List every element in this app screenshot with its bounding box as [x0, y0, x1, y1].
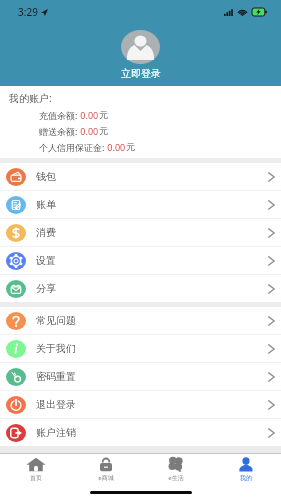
staticText: 分享	[36, 282, 56, 295]
button[interactable]: 立即登录	[121, 67, 161, 80]
staticText: 元	[126, 141, 135, 152]
button[interactable]: 常见问题	[0, 307, 281, 334]
button[interactable]: 账户注销	[0, 419, 281, 446]
button[interactable]: e商城	[71, 454, 141, 484]
staticText: 钱包	[36, 170, 56, 183]
staticText: 关于我们	[36, 342, 76, 355]
staticText: e商城	[98, 474, 114, 482]
staticText: 账户注销	[36, 426, 76, 439]
staticText: 个人信用保证金:	[39, 141, 105, 153]
staticText: 赠送余额:	[39, 125, 78, 137]
staticText: 退出登录	[36, 398, 76, 411]
staticText: 我的	[240, 474, 252, 482]
button[interactable]: 首页	[0, 454, 71, 484]
button[interactable]: 密码重置	[0, 363, 281, 390]
staticText: 0.00	[78, 125, 99, 137]
staticText: 元	[99, 109, 108, 120]
button[interactable]: 消费	[0, 219, 281, 246]
staticText: 设置	[36, 254, 56, 267]
staticText: 我的账户:	[9, 91, 52, 105]
staticText: 充值余额:	[39, 109, 78, 121]
staticText: 密码重置	[36, 370, 76, 383]
staticText: 0.00	[78, 109, 99, 121]
button[interactable]: 钱包	[0, 163, 281, 190]
staticText: 3:29	[18, 5, 38, 19]
button[interactable]: 设置	[0, 247, 281, 274]
staticText: 常见问题	[36, 314, 76, 327]
staticText: 账单	[36, 198, 56, 211]
button[interactable]: e生活	[141, 454, 211, 484]
button[interactable]: 账单	[0, 191, 281, 218]
staticText: 0.00	[105, 141, 126, 153]
staticText: 首页	[30, 474, 42, 482]
button[interactable]: 我的	[211, 454, 281, 484]
button[interactable]: 分享	[0, 275, 281, 302]
button[interactable]: 关于我们	[0, 335, 281, 362]
staticText: e生活	[168, 474, 184, 482]
button[interactable]: 退出登录	[0, 391, 281, 418]
staticText: 元	[99, 125, 108, 136]
staticText: 消费	[36, 226, 56, 239]
